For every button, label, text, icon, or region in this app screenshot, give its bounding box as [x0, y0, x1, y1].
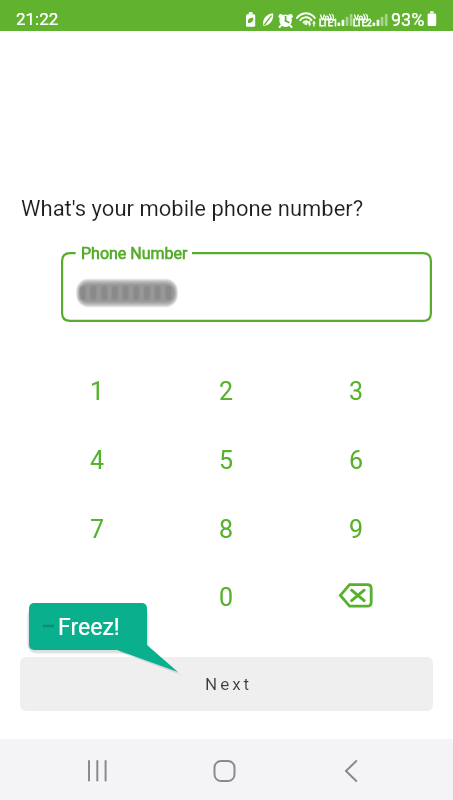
button[interactable]: 6	[312, 430, 400, 490]
staticText: 3	[349, 377, 364, 406]
staticText: 4	[90, 446, 105, 475]
staticText: Freez!	[58, 614, 120, 641]
button[interactable]: 1	[53, 361, 141, 421]
button[interactable]: 4	[53, 430, 141, 490]
button[interactable]: 9	[312, 499, 400, 559]
button[interactable]: 7	[53, 499, 141, 559]
staticText: Vo))	[320, 13, 335, 22]
button[interactable]: 2	[182, 361, 270, 421]
button[interactable]: 8	[182, 499, 270, 559]
staticText: 7	[90, 515, 105, 544]
button[interactable]: 3	[312, 361, 400, 421]
button[interactable]: 5	[182, 430, 270, 490]
staticText: 1	[90, 377, 105, 406]
staticText: 8	[219, 515, 234, 544]
staticText: What's your mobile phone number?	[21, 196, 364, 222]
staticText: 2	[219, 377, 234, 406]
button[interactable]: Back	[316, 739, 386, 800]
staticText: 21:22	[16, 9, 59, 29]
staticText: 5	[219, 446, 234, 475]
button[interactable]: Next	[20, 657, 433, 711]
staticText: Next	[205, 674, 253, 694]
staticText: 93%	[391, 9, 425, 30]
staticText: 0	[219, 583, 234, 612]
button[interactable]: 0	[182, 567, 270, 627]
staticText: LTE1	[319, 18, 338, 28]
button[interactable]: Home	[190, 739, 260, 800]
button[interactable]: Recents	[62, 739, 132, 800]
staticText: Phone Number	[81, 244, 188, 263]
staticText: LTE2	[353, 18, 372, 28]
button[interactable]: Backspace	[312, 567, 400, 627]
staticText: Vo))	[354, 13, 369, 22]
staticText: 9	[349, 515, 364, 544]
staticText: 6	[349, 446, 364, 475]
